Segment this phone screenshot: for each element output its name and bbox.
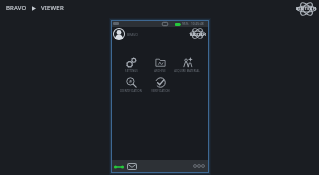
staticText: IDENTIFICATION bbox=[120, 89, 142, 93]
staticText: 95% bbox=[182, 22, 189, 26]
staticText: BIOTECH bbox=[296, 6, 317, 12]
button[interactable]: BRAVO bbox=[6, 4, 64, 12]
staticText: ARCHIVE bbox=[154, 69, 166, 73]
button[interactable]: Logo bbox=[294, 2, 319, 16]
staticText: 10:25:48 bbox=[191, 22, 204, 26]
staticText: BRAVO bbox=[127, 32, 138, 37]
button[interactable]: Home bbox=[197, 164, 201, 168]
button[interactable]: Logo bbox=[187, 28, 208, 39]
staticText: VERIFICATION bbox=[151, 89, 170, 93]
button[interactable]: ACQUIRE MATERIAL bbox=[171, 57, 203, 73]
button[interactable]: Back bbox=[193, 164, 197, 168]
button[interactable]: IDENTIFICATION bbox=[115, 77, 147, 93]
button[interactable]: SETTINGS bbox=[115, 57, 147, 73]
button[interactable]: VERIFICATION bbox=[144, 77, 176, 93]
button[interactable]: Recents bbox=[201, 164, 205, 168]
button[interactable]: Connection bbox=[114, 164, 124, 170]
staticText: SETTINGS bbox=[125, 69, 138, 73]
staticText: VIEWER bbox=[41, 4, 64, 12]
staticText: ACQUIRE MATERIAL bbox=[174, 69, 200, 73]
button[interactable]: ARCHIVE bbox=[144, 57, 176, 73]
staticText: BRAVO bbox=[6, 4, 27, 12]
button[interactable]: Messages bbox=[127, 163, 137, 170]
button[interactable]: BRAVO bbox=[113, 28, 138, 40]
staticText: BIOTECH bbox=[190, 32, 206, 36]
